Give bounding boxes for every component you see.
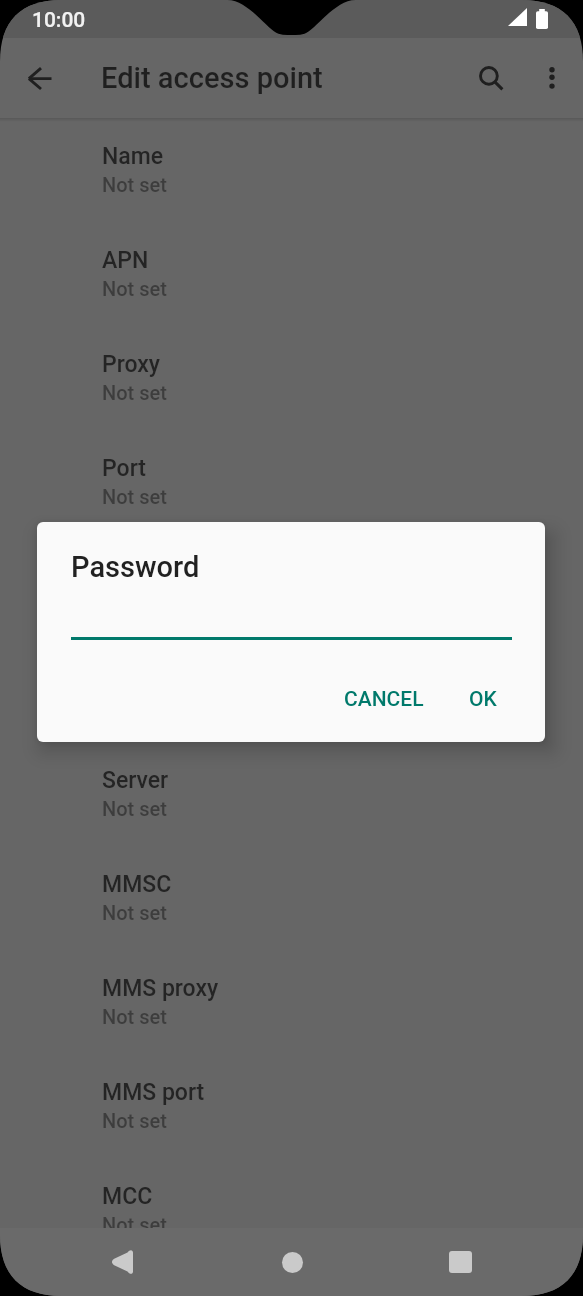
staticText: Not set xyxy=(102,797,167,820)
staticText: Not set xyxy=(102,1005,167,1028)
staticText: MCC xyxy=(102,1183,153,1210)
staticText: Not set xyxy=(102,277,167,300)
button[interactable]: MMS port xyxy=(0,1058,583,1162)
button[interactable]: MMS proxy xyxy=(0,954,583,1058)
staticText: MMSC xyxy=(102,871,172,898)
button[interactable]: Password xyxy=(0,642,583,746)
staticText: Proxy xyxy=(102,351,161,378)
button[interactable]: MNC xyxy=(0,1266,583,1296)
staticText: MMS proxy xyxy=(102,975,219,1002)
button[interactable]: APN xyxy=(0,226,583,330)
staticText: Password xyxy=(71,550,200,584)
staticText: Edit access point xyxy=(101,61,323,95)
button[interactable]: Server xyxy=(0,746,583,850)
button[interactable]: More options xyxy=(524,53,580,109)
button[interactable]: Navigate up xyxy=(14,51,70,107)
button[interactable]: MCC xyxy=(0,1162,583,1266)
staticText: CANCEL xyxy=(344,687,424,712)
staticText: Not set xyxy=(102,901,167,924)
button[interactable]: Proxy xyxy=(0,330,583,434)
button[interactable]: MMSC xyxy=(0,850,583,954)
staticText: Name xyxy=(102,143,164,170)
staticText: Not set xyxy=(102,1109,167,1132)
button[interactable]: Port xyxy=(0,434,583,538)
staticText: Username xyxy=(102,559,207,586)
button[interactable]: Name xyxy=(0,122,583,226)
staticText: Not set xyxy=(102,485,167,508)
staticText: Not set xyxy=(102,1213,167,1236)
button[interactable]: CANCEL xyxy=(328,675,440,724)
button[interactable]: Username xyxy=(0,538,583,642)
button[interactable]: OK xyxy=(453,675,513,724)
staticText: Not set xyxy=(102,381,167,404)
button[interactable]: Back xyxy=(94,1234,150,1290)
staticText: Not set xyxy=(102,173,167,196)
staticText: Server xyxy=(102,767,169,794)
button[interactable]: Search xyxy=(466,53,522,109)
staticText: APN xyxy=(102,247,149,274)
button[interactable]: Recent apps xyxy=(432,1234,488,1290)
staticText: MMS port xyxy=(102,1079,205,1106)
staticText: Port xyxy=(102,455,146,482)
staticText: 10:00 xyxy=(32,8,86,33)
button[interactable]: Home xyxy=(264,1234,320,1290)
staticText: OK xyxy=(469,687,497,712)
